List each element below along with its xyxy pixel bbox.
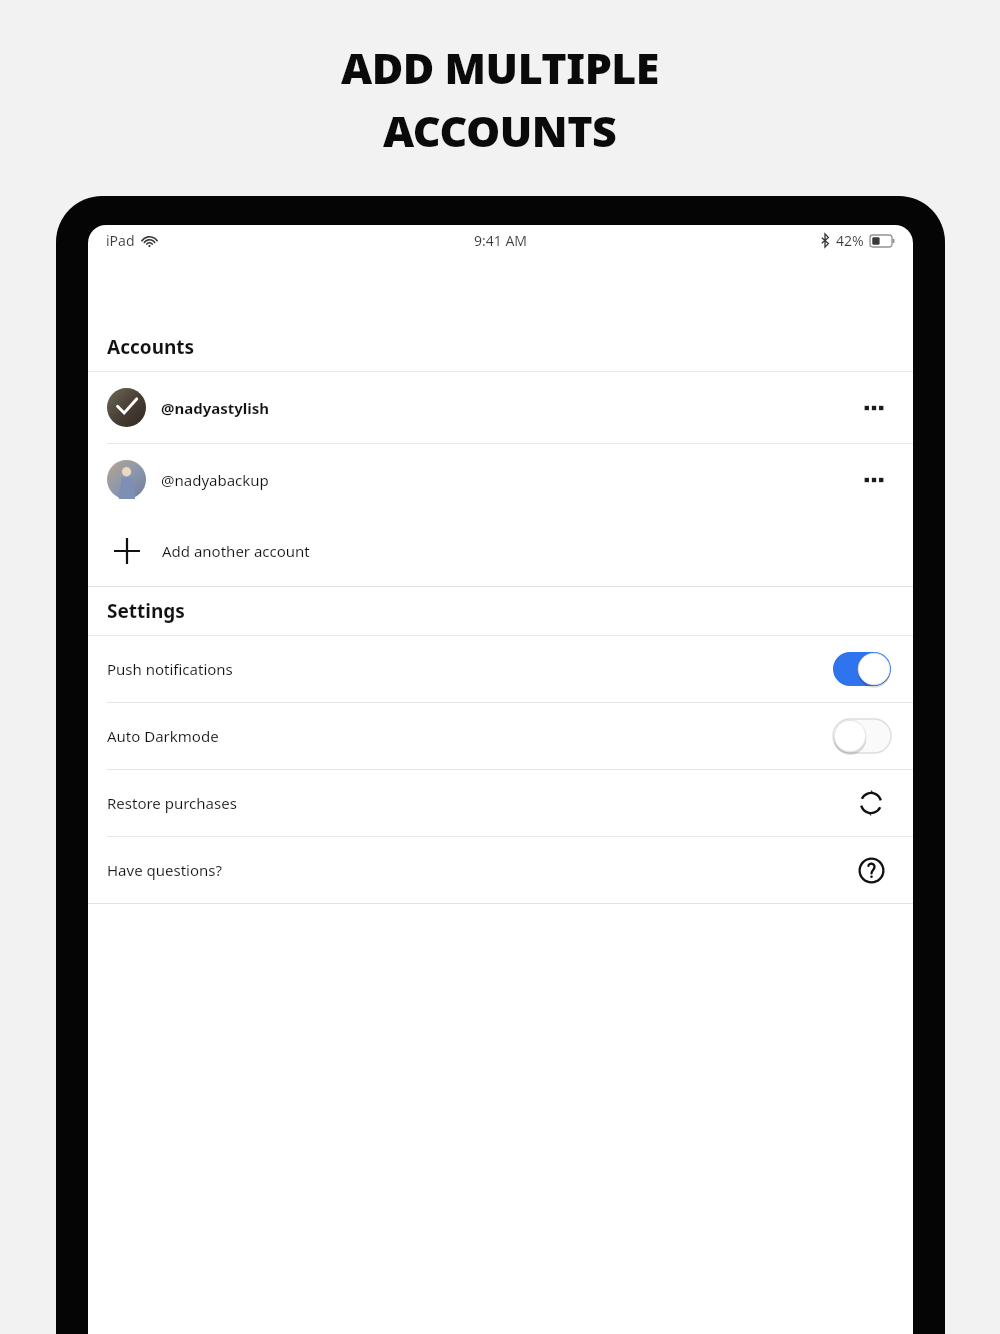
button[interactable]: Have questions? [88, 837, 913, 903]
button[interactable]: Restore purchases [851, 783, 891, 823]
staticText: Push notifications [107, 659, 233, 679]
button[interactable]: More options [854, 388, 894, 428]
button[interactable]: @nadyabackup [88, 444, 913, 515]
staticText: Auto Darkmode [107, 726, 219, 746]
staticText: iPad [106, 231, 135, 250]
staticText: Restore purchases [107, 793, 237, 813]
staticText: 9:41 AM [474, 231, 528, 250]
button[interactable]: Add another account [88, 515, 913, 586]
button[interactable]: Toggle off [833, 719, 891, 753]
staticText: 42% [836, 231, 864, 250]
button[interactable]: Auto Darkmode [88, 703, 913, 769]
button[interactable]: @nadyastylish [88, 372, 913, 443]
staticText: Have questions? [107, 860, 222, 880]
button[interactable]: More options [854, 460, 894, 500]
staticText: @nadyastylish [161, 398, 270, 418]
staticText: Settings [107, 598, 185, 624]
button[interactable]: Push notifications [88, 636, 913, 702]
staticText: ADD MULTIPLE [341, 38, 659, 97]
staticText: Accounts [107, 334, 195, 360]
staticText: Add another account [162, 541, 310, 561]
button[interactable]: Have questions? [851, 850, 891, 890]
button[interactable]: Toggle on [833, 652, 891, 686]
staticText: ACCOUNTS [383, 101, 617, 160]
button[interactable]: Restore purchases [88, 770, 913, 836]
staticText: @nadyabackup [161, 470, 269, 490]
